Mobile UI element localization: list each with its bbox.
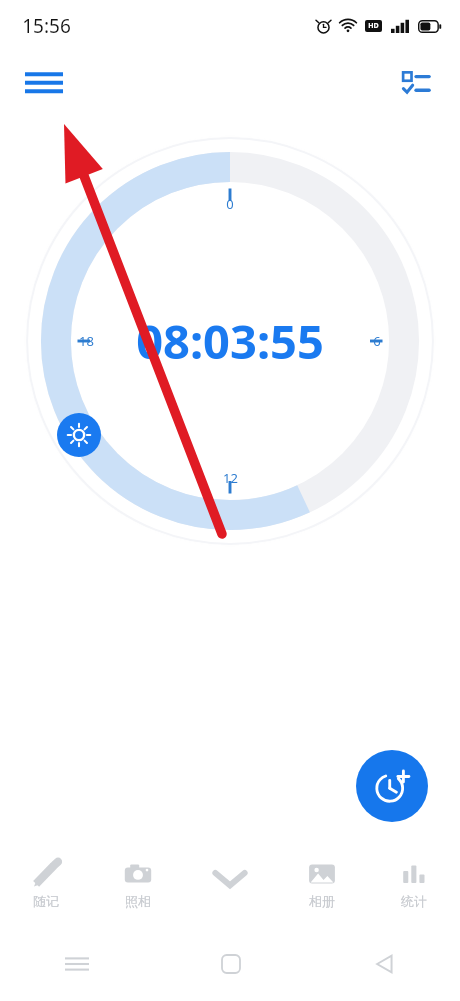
button[interactable]: Task list: [390, 57, 442, 109]
button[interactable]: Add timer: [356, 750, 428, 822]
staticText: 18: [79, 332, 94, 350]
button[interactable]: Collapse: [184, 855, 276, 919]
button[interactable]: Recents: [0, 941, 154, 987]
button[interactable]: 相册: [276, 855, 368, 919]
button[interactable]: Menu: [16, 55, 72, 111]
button[interactable]: 统计: [368, 855, 460, 919]
staticText: 相册: [309, 893, 335, 909]
button[interactable]: 照相: [92, 855, 184, 919]
button[interactable]: Brightness: [57, 413, 101, 457]
staticText: 15:56: [22, 13, 71, 39]
staticText: 随记: [33, 893, 59, 909]
staticText: HD: [368, 21, 379, 31]
button[interactable]: Back: [307, 941, 460, 987]
staticText: 08:03:55: [136, 309, 324, 373]
staticText: 12: [223, 469, 238, 487]
staticText: 统计: [401, 893, 427, 909]
button[interactable]: Home: [154, 941, 307, 987]
staticText: 照相: [125, 893, 151, 909]
staticText: 0: [226, 195, 234, 213]
staticText: 6: [373, 332, 381, 350]
button[interactable]: 随记: [0, 855, 92, 919]
